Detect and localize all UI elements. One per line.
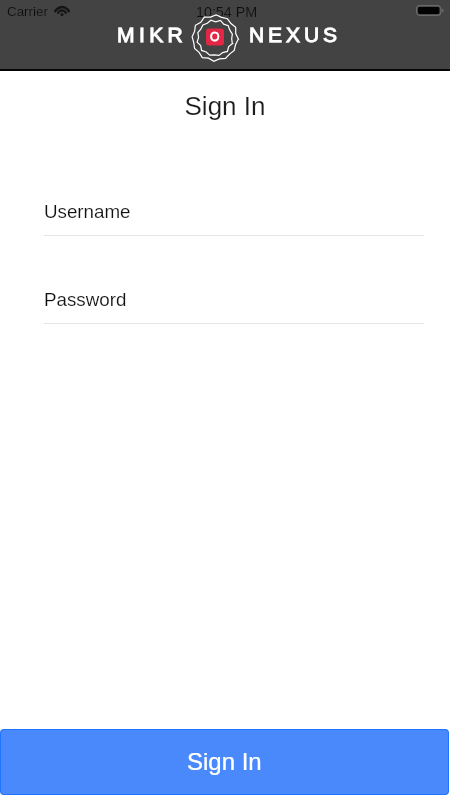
staticText: Password xyxy=(44,289,127,310)
staticText: MIKR xyxy=(117,23,188,46)
staticText: Sign In xyxy=(0,91,450,120)
staticText: 10:54 PM xyxy=(196,4,258,20)
staticText: O xyxy=(210,30,220,44)
button[interactable]: Password xyxy=(0,289,450,324)
other: Wi-Fi signal xyxy=(54,6,70,16)
other: Battery full xyxy=(416,5,444,16)
staticText: Carrier xyxy=(7,4,48,19)
button[interactable]: Sign In xyxy=(0,729,449,795)
staticText: Username xyxy=(44,201,131,222)
staticText: Sign In xyxy=(187,748,262,775)
staticText: NEXUS xyxy=(249,23,341,46)
other: Mikro Nexus logo xyxy=(190,13,240,63)
button[interactable]: Username xyxy=(0,201,450,236)
